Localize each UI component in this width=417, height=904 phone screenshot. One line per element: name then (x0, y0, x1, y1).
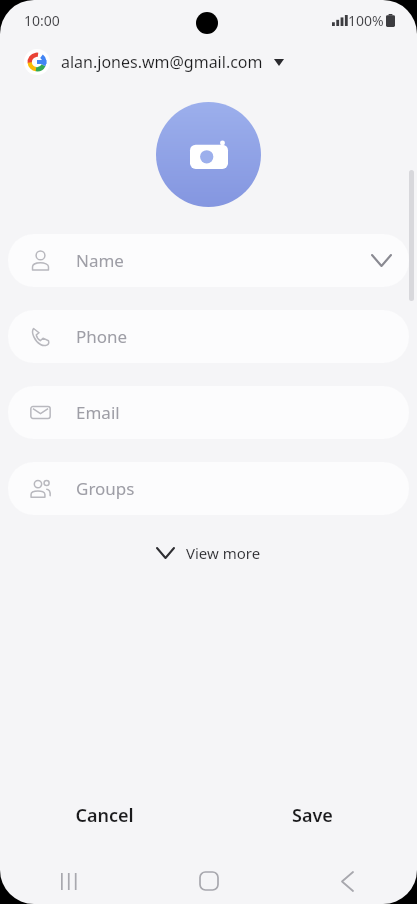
button[interactable]: Groups (8, 462, 409, 515)
button[interactable]: Phone (8, 310, 409, 363)
staticText: Groups (76, 477, 135, 500)
button[interactable]: Save (208, 793, 417, 837)
button[interactable]: Recent apps (0, 858, 139, 904)
button[interactable]: Home (139, 858, 278, 904)
button[interactable]: Cancel (0, 793, 208, 837)
button[interactable]: Email (8, 386, 409, 439)
staticText: alan.jones.wm@gmail.com (61, 51, 263, 73)
staticText: Save (292, 803, 333, 828)
staticText: Email (76, 401, 120, 424)
staticText: View more (186, 543, 261, 563)
staticText: Phone (76, 325, 128, 348)
staticText: Name (76, 249, 124, 272)
staticText: Cancel (75, 803, 134, 828)
button[interactable]: alan.jones.wm@gmail.com (0, 40, 417, 84)
staticText: 100% (348, 11, 384, 30)
button[interactable]: Back (278, 858, 417, 904)
button[interactable]: Name (8, 234, 409, 287)
button[interactable]: View more (143, 534, 275, 572)
button[interactable]: Add photo (156, 102, 261, 207)
staticText: 10:00 (24, 11, 60, 30)
